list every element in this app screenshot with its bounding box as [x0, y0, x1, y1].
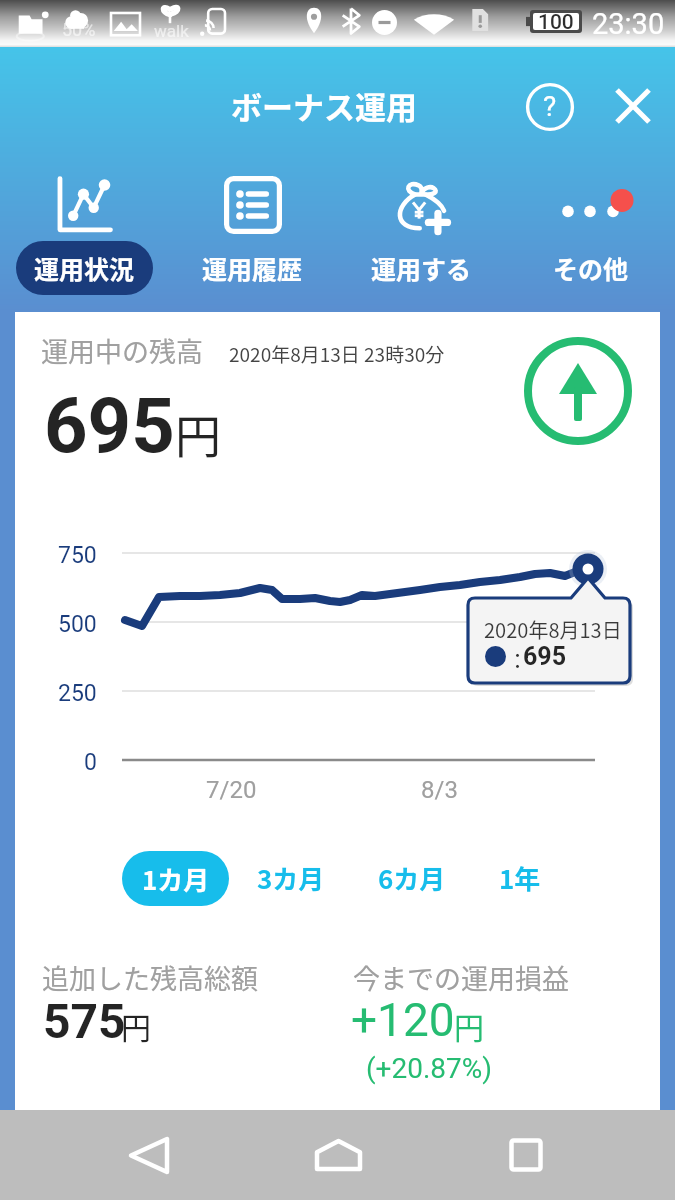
staticText: 100	[538, 10, 574, 35]
button[interactable]: Home	[298, 1115, 378, 1195]
button[interactable]: 運用履歴	[168, 159, 337, 312]
staticText: 円	[454, 1004, 484, 1047]
staticText: その他	[553, 250, 629, 286]
button[interactable]: 6カ月	[369, 855, 454, 901]
button[interactable]: Close	[604, 77, 662, 135]
staticText: ：	[507, 644, 528, 674]
button[interactable]: 1年	[491, 855, 549, 901]
staticText: 23:30	[592, 7, 665, 41]
staticText: 0	[84, 749, 97, 776]
staticText: (+20.87%)	[366, 1052, 493, 1085]
staticText: 250	[58, 680, 97, 707]
staticText: 運用中の残高	[41, 331, 203, 370]
staticText: ボーナス運用	[231, 83, 417, 128]
staticText: 50%	[62, 19, 96, 40]
button[interactable]: 3カ月	[248, 855, 333, 901]
staticText: 8/3	[421, 776, 458, 804]
staticText: 追加した残高総額	[42, 958, 258, 997]
button[interactable]: Back	[109, 1115, 189, 1195]
button[interactable]: 運用状況	[0, 159, 168, 312]
button[interactable]: その他	[506, 159, 675, 312]
staticText: ?	[543, 90, 557, 123]
staticText: 運用状況	[34, 250, 135, 286]
staticText: 500	[58, 611, 97, 638]
staticText: 6カ月	[378, 859, 446, 897]
button[interactable]: 運用する	[337, 159, 506, 312]
staticText: 750	[58, 542, 97, 569]
staticText: 2020年8月13日 23時30分	[229, 340, 445, 368]
staticText: 575	[43, 993, 126, 1049]
staticText: 円	[121, 1004, 151, 1047]
button[interactable]: Recents	[486, 1115, 566, 1195]
staticText: walk	[154, 21, 189, 41]
staticText: 運用する	[371, 250, 472, 286]
staticText: 今までの運用損益	[353, 958, 569, 997]
button[interactable]: Help	[521, 78, 579, 136]
staticText: 1年	[499, 859, 541, 897]
staticText: 7/20	[206, 776, 257, 804]
staticText: 1カ月	[142, 860, 210, 898]
staticText: +120	[351, 993, 455, 1047]
staticText: 運用履歴	[202, 250, 303, 286]
staticText: 円	[175, 400, 221, 467]
staticText: 695	[44, 381, 175, 470]
staticText: 3カ月	[257, 859, 325, 897]
staticText: 2020年8月13日	[484, 615, 622, 644]
button[interactable]: 1カ月	[122, 851, 229, 906]
staticText: 695	[523, 642, 567, 671]
